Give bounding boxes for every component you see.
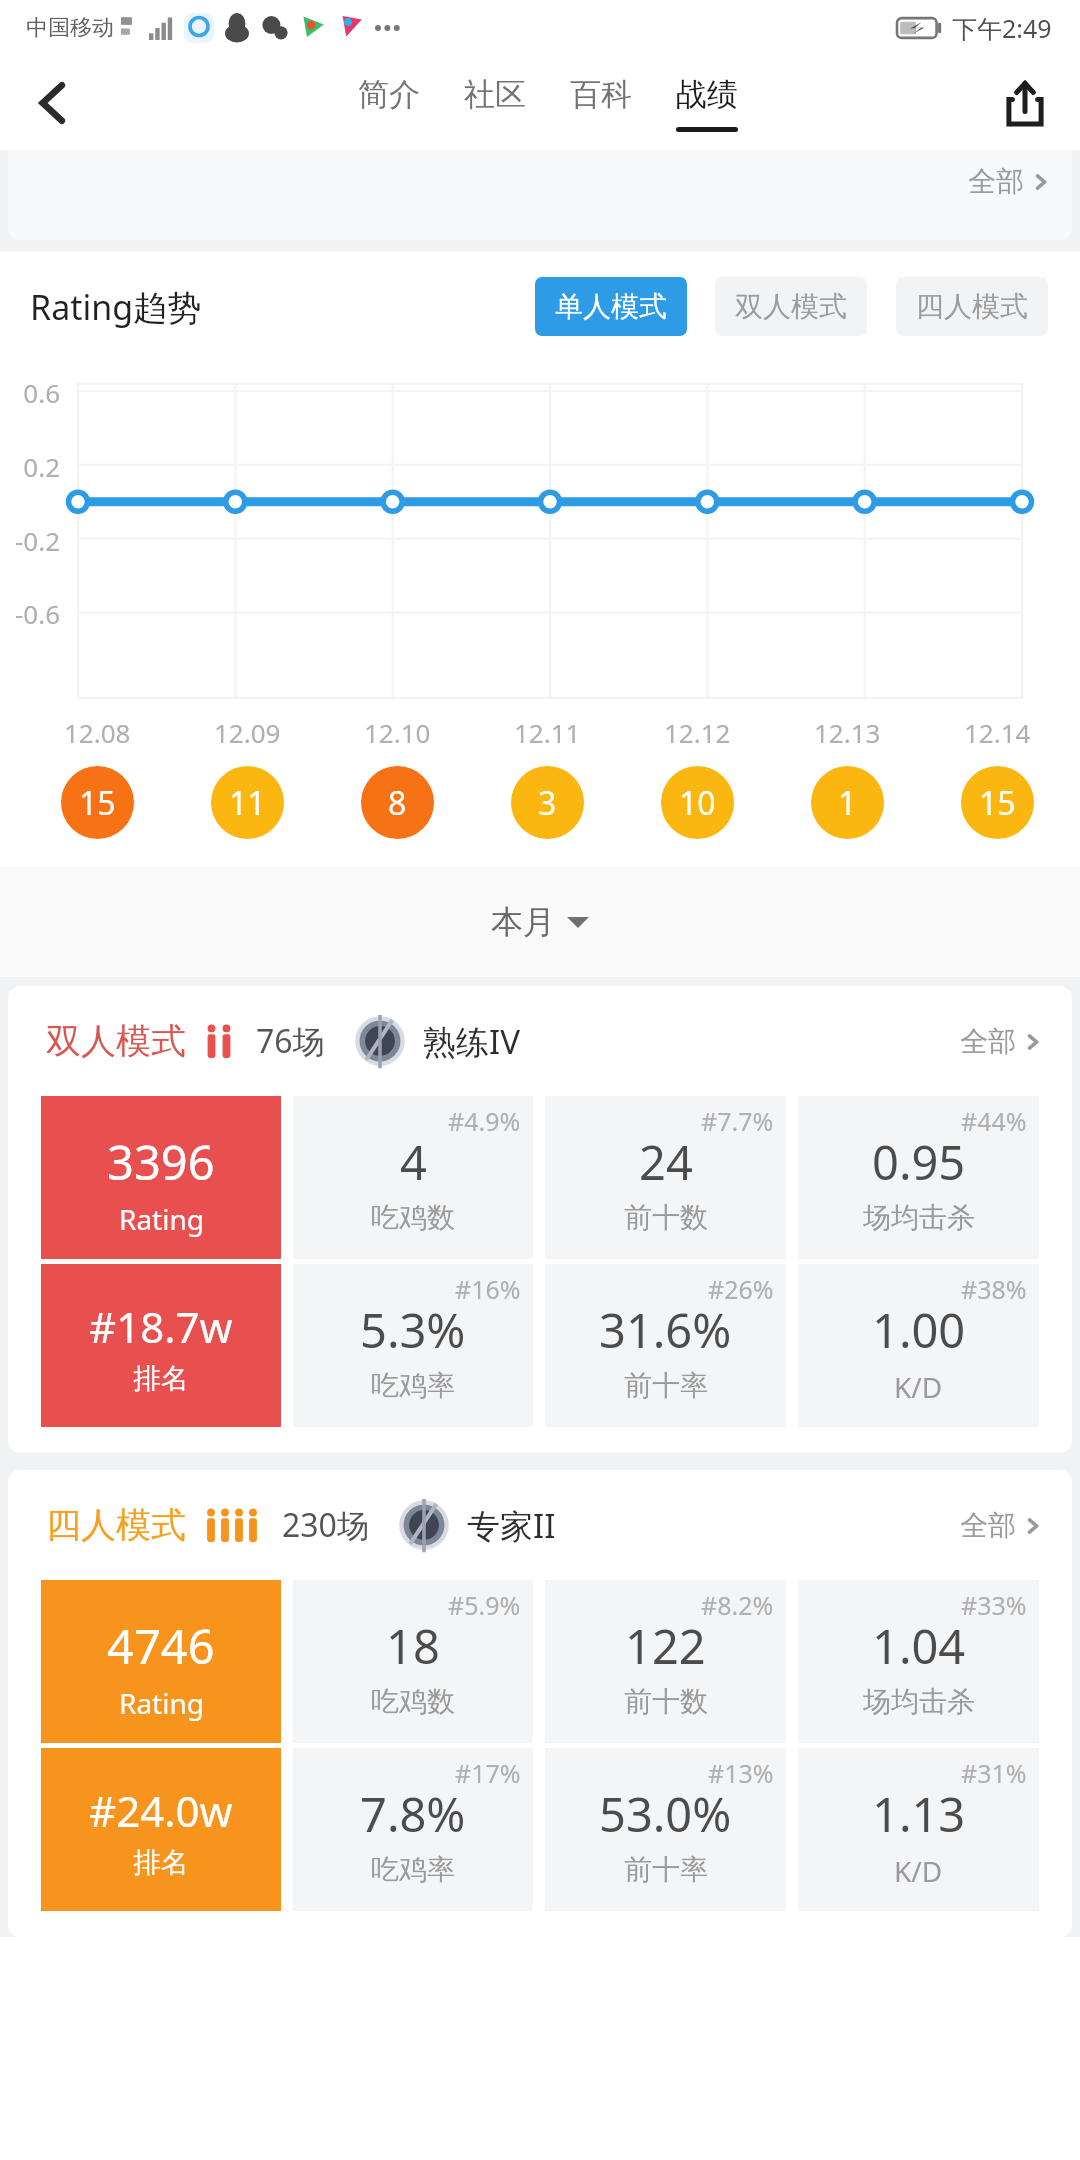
staticText: #5.9% xyxy=(448,1588,521,1622)
staticText: 12.10 xyxy=(364,715,431,750)
button[interactable]: #4.9% xyxy=(293,1096,533,1259)
staticText: 前十数 xyxy=(624,1200,708,1235)
staticText: 吃鸡数 xyxy=(371,1200,455,1235)
staticText: #24.0w xyxy=(89,1782,233,1839)
button[interactable]: #7.7% xyxy=(545,1096,786,1259)
button[interactable]: 全部 xyxy=(954,1502,1050,1549)
staticText: #13% xyxy=(708,1756,774,1790)
staticText: 下午2:49 xyxy=(952,11,1052,45)
staticText: 百科 xyxy=(570,75,632,114)
staticText: #16% xyxy=(455,1272,521,1306)
staticText: 7.8% xyxy=(360,1782,466,1846)
staticText: 1 xyxy=(838,781,857,825)
button[interactable]: #13% xyxy=(545,1748,786,1911)
staticText: 全部 xyxy=(960,1024,1016,1059)
staticText: 全部 xyxy=(960,1508,1016,1543)
staticText: #33% xyxy=(961,1588,1027,1622)
staticText: 专家II xyxy=(467,1503,556,1548)
staticText: 前十数 xyxy=(624,1684,708,1719)
button[interactable]: #26% xyxy=(545,1264,786,1427)
staticText: 122 xyxy=(625,1614,706,1678)
button[interactable]: 15 xyxy=(961,766,1034,839)
staticText: 前十率 xyxy=(624,1852,708,1887)
staticText: 1.00 xyxy=(872,1298,966,1362)
staticText: 排名 xyxy=(133,1845,189,1880)
staticText: 3396 xyxy=(107,1130,215,1194)
staticText: #31% xyxy=(961,1756,1027,1790)
staticText: 双人模式 xyxy=(46,1019,186,1063)
button[interactable]: 10 xyxy=(661,766,734,839)
button[interactable]: 本月 xyxy=(475,886,605,958)
button[interactable]: #8.2% xyxy=(545,1580,786,1743)
staticText: #18.7w xyxy=(89,1298,233,1355)
button[interactable]: 单人模式 xyxy=(535,277,687,336)
staticText: 双人模式 xyxy=(735,289,847,324)
staticText: 1.04 xyxy=(872,1614,966,1678)
button[interactable]: 1 xyxy=(811,766,884,839)
button[interactable]: Back xyxy=(16,66,90,140)
button[interactable]: 全部 xyxy=(968,164,1052,199)
staticText: 排名 xyxy=(133,1361,189,1396)
staticText: 12.13 xyxy=(814,715,881,750)
button[interactable]: #44% xyxy=(798,1096,1039,1259)
staticText: 230场 xyxy=(282,1503,369,1547)
button[interactable]: #17% xyxy=(293,1748,533,1911)
staticText: 简介 xyxy=(358,75,420,114)
button[interactable]: #18.7w xyxy=(41,1264,281,1427)
staticText: 5.3% xyxy=(360,1298,466,1362)
button[interactable]: 3 xyxy=(511,766,584,839)
staticText: 12.11 xyxy=(514,715,581,750)
staticText: 12.09 xyxy=(214,715,281,750)
button[interactable]: 3396 xyxy=(41,1096,281,1259)
staticText: Rating xyxy=(119,1684,204,1722)
button[interactable]: 4746 xyxy=(41,1580,281,1743)
button[interactable]: #31% xyxy=(798,1748,1039,1911)
staticText: 吃鸡率 xyxy=(371,1368,455,1403)
staticText: #38% xyxy=(961,1272,1027,1306)
staticText: Rating趋势 xyxy=(30,284,202,330)
button[interactable]: 15 xyxy=(61,766,134,839)
button[interactable]: 11 xyxy=(211,766,284,839)
staticText: 四人模式 xyxy=(46,1503,186,1547)
button[interactable]: 百科 xyxy=(566,71,636,136)
button[interactable]: 社区 xyxy=(460,71,530,136)
staticText: 全部 xyxy=(968,164,1024,199)
staticText: 8 xyxy=(388,781,407,825)
staticText: 18 xyxy=(386,1614,440,1678)
button[interactable]: 四人模式 xyxy=(896,277,1048,336)
staticText: 单人模式 xyxy=(555,289,667,324)
staticText: 4746 xyxy=(107,1614,215,1678)
staticText: 社区 xyxy=(464,75,526,114)
staticText: 31.6% xyxy=(599,1298,732,1362)
button[interactable]: 8 xyxy=(361,766,434,839)
staticText: 熟练IV xyxy=(423,1019,520,1064)
button[interactable]: 四人模式 xyxy=(8,1470,1072,1580)
button[interactable]: 双人模式 xyxy=(715,277,867,336)
staticText: 吃鸡数 xyxy=(371,1684,455,1719)
button[interactable]: #33% xyxy=(798,1580,1039,1743)
button[interactable]: #5.9% xyxy=(293,1580,533,1743)
staticText: 3 xyxy=(538,781,557,825)
button[interactable]: 简介 xyxy=(354,71,424,136)
staticText: #4.9% xyxy=(448,1104,521,1138)
staticText: #7.7% xyxy=(701,1104,774,1138)
button[interactable]: 全部 xyxy=(954,1018,1050,1065)
staticText: -0.2 xyxy=(0,523,60,558)
staticText: 12.12 xyxy=(664,715,731,750)
staticText: 11 xyxy=(229,781,266,825)
button[interactable]: #38% xyxy=(798,1264,1039,1427)
button[interactable]: #24.0w xyxy=(41,1748,281,1911)
button[interactable]: Share xyxy=(990,68,1060,138)
staticText: 场均击杀 xyxy=(863,1684,975,1719)
button[interactable]: 双人模式 xyxy=(8,986,1072,1096)
staticText: K/D xyxy=(894,1852,943,1890)
staticText: 76场 xyxy=(256,1019,325,1063)
staticText: 中国移动 xyxy=(26,14,114,42)
staticText: 4 xyxy=(400,1130,427,1194)
staticText: 本月 xyxy=(491,902,555,942)
button[interactable]: 战绩 xyxy=(672,71,742,136)
staticText: 1.13 xyxy=(872,1782,966,1846)
staticText: #8.2% xyxy=(701,1588,774,1622)
button[interactable]: #16% xyxy=(293,1264,533,1427)
staticText: 战绩 xyxy=(676,75,738,114)
